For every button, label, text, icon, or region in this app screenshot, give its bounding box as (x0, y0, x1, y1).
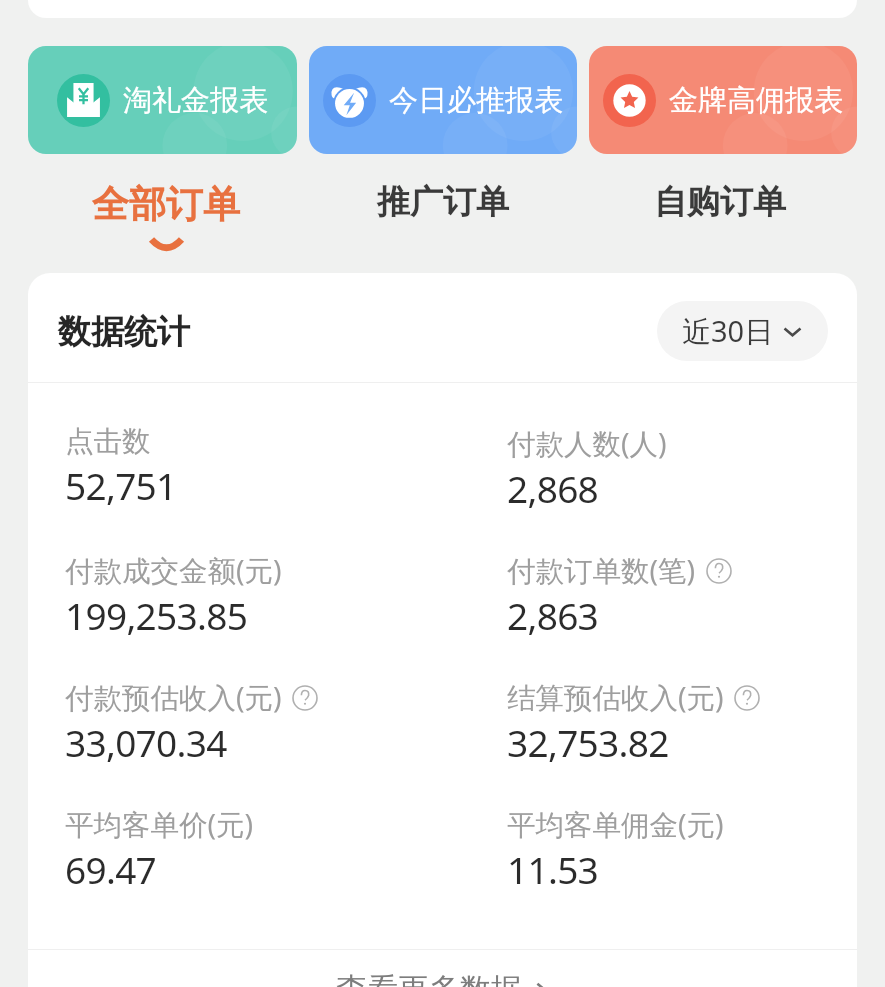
staticText: 金牌高佣报表 (669, 82, 843, 119)
staticText: 平均客单佣金(元) (507, 805, 724, 844)
button[interactable]: 关于付款订单数(笔) 的说明 (706, 558, 732, 584)
staticText: 付款人数(人) (507, 424, 667, 463)
staticText: 全部订单 (92, 181, 240, 228)
staticText: 32,753.82 (507, 717, 669, 767)
button[interactable]: 今日必推报表 (309, 46, 577, 154)
staticText: 11.53 (507, 844, 599, 894)
staticText: 52,751 (65, 460, 177, 510)
staticText: 付款成交金额(元) (65, 551, 282, 590)
staticText: 付款预估收入(元) (65, 678, 282, 717)
button[interactable]: 自购订单 (581, 175, 858, 260)
button[interactable]: 关于付款预估收入(元) 的说明 (292, 685, 318, 711)
button[interactable]: 金牌高佣报表 (589, 46, 857, 154)
button[interactable]: 查看更多数据 (28, 950, 857, 987)
staticText: 数据统计 (58, 311, 190, 353)
staticText: 69.47 (65, 844, 157, 894)
staticText: 付款订单数(笔) (507, 551, 696, 590)
staticText: 2,868 (507, 463, 599, 513)
button[interactable]: 淘礼金报表 (28, 46, 297, 154)
staticText: 淘礼金报表 (123, 82, 268, 119)
staticText: 推广订单 (377, 181, 509, 223)
staticText: 2,863 (507, 590, 599, 640)
staticText: 查看更多数据 (336, 970, 522, 987)
staticText: 点击数 (65, 424, 151, 460)
staticText: 199,253.85 (65, 590, 248, 640)
staticText: 结算预估收入(元) (507, 678, 724, 717)
staticText: 自购订单 (654, 181, 786, 223)
staticText: 今日必推报表 (389, 82, 563, 119)
button[interactable]: 关于结算预估收入(元) 的说明 (734, 685, 760, 711)
staticText: 近30日 (682, 311, 774, 351)
staticText: 平均客单价(元) (65, 805, 254, 844)
button[interactable]: 全部订单 (27, 175, 304, 260)
button[interactable]: 推广订单 (304, 175, 581, 260)
staticText: 33,070.34 (65, 717, 227, 767)
button[interactable]: 近30日 (657, 301, 828, 361)
